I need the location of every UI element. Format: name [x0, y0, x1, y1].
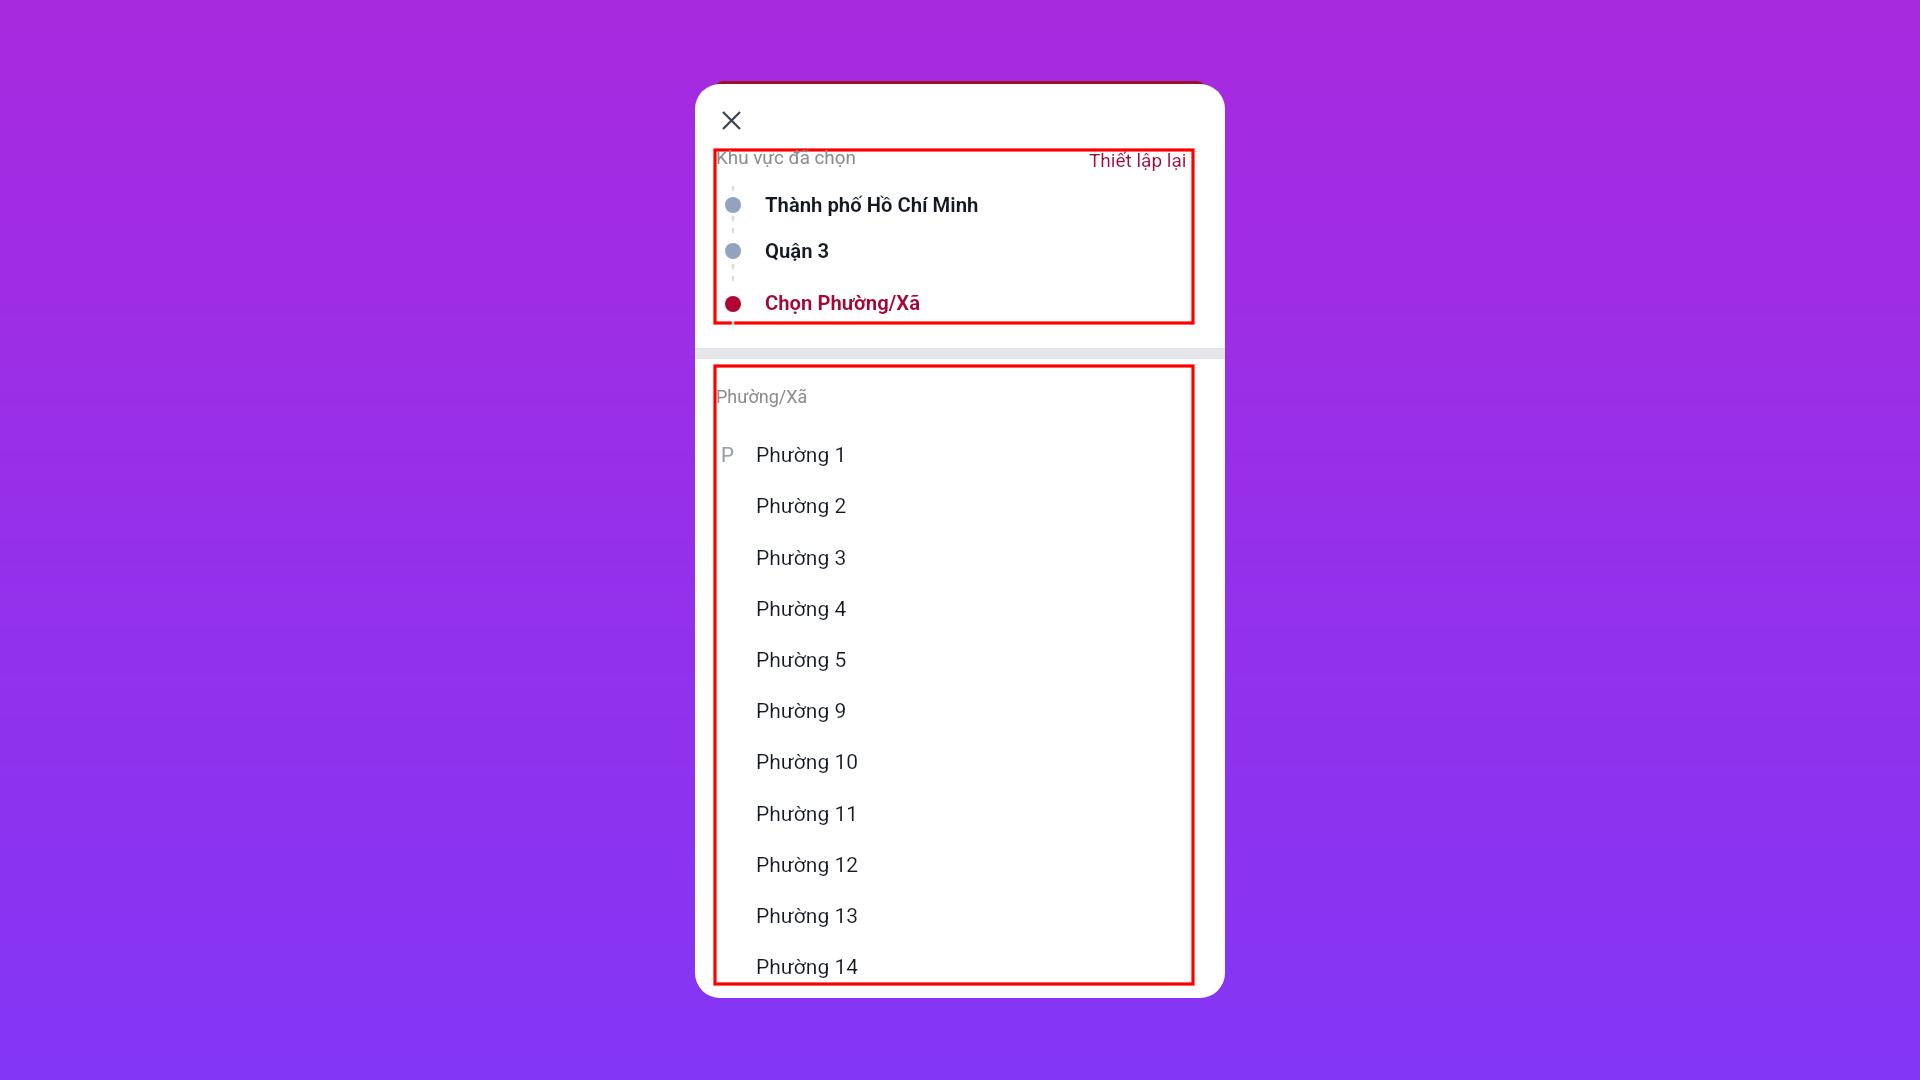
button[interactable]: Phường 14	[713, 942, 1191, 993]
button[interactable]: P	[713, 430, 1191, 481]
staticText: P	[721, 443, 734, 467]
button[interactable]: Phường 2	[713, 481, 1191, 532]
button[interactable]: Phường 5	[713, 635, 1191, 686]
button[interactable]: Chọn Phường/Xã	[713, 283, 1191, 325]
staticText: Phường 11	[756, 802, 859, 827]
staticText: Phường 4	[756, 597, 847, 622]
button[interactable]: Thiết lập lại	[1089, 149, 1187, 171]
staticText: Phường 5	[756, 648, 847, 673]
button[interactable]: Phường 3	[713, 533, 1191, 584]
staticText: Phường 1	[756, 443, 847, 468]
staticText: Phường 9	[756, 699, 847, 724]
staticText: Quận 3	[765, 239, 830, 263]
staticText: Thành phố Hồ Chí Minh	[765, 193, 979, 217]
button[interactable]: Phường 4	[713, 584, 1191, 635]
staticText: Phường 13	[756, 904, 859, 929]
staticText: Phường 10	[756, 750, 859, 775]
staticText: Phường 12	[756, 853, 859, 878]
button[interactable]: Thành phố Hồ Chí Minh	[713, 184, 1191, 226]
button[interactable]: Phường 9	[713, 686, 1191, 737]
button[interactable]: Phường 11	[713, 789, 1191, 840]
button[interactable]: Phường 12	[713, 840, 1191, 891]
staticText: Phường 2	[756, 494, 847, 519]
button[interactable]: Phường 10	[713, 737, 1191, 788]
button[interactable]: Close	[719, 108, 743, 132]
staticText: Phường 3	[756, 546, 847, 571]
staticText: Chọn Phường/Xã	[765, 291, 920, 315]
staticText: Khu vực đã chọn	[716, 147, 856, 169]
staticText: Phường/Xã	[716, 386, 808, 407]
staticText: Phường 14	[756, 955, 859, 980]
button[interactable]: Phường 13	[713, 891, 1191, 942]
button[interactable]: Quận 3	[713, 230, 1191, 272]
